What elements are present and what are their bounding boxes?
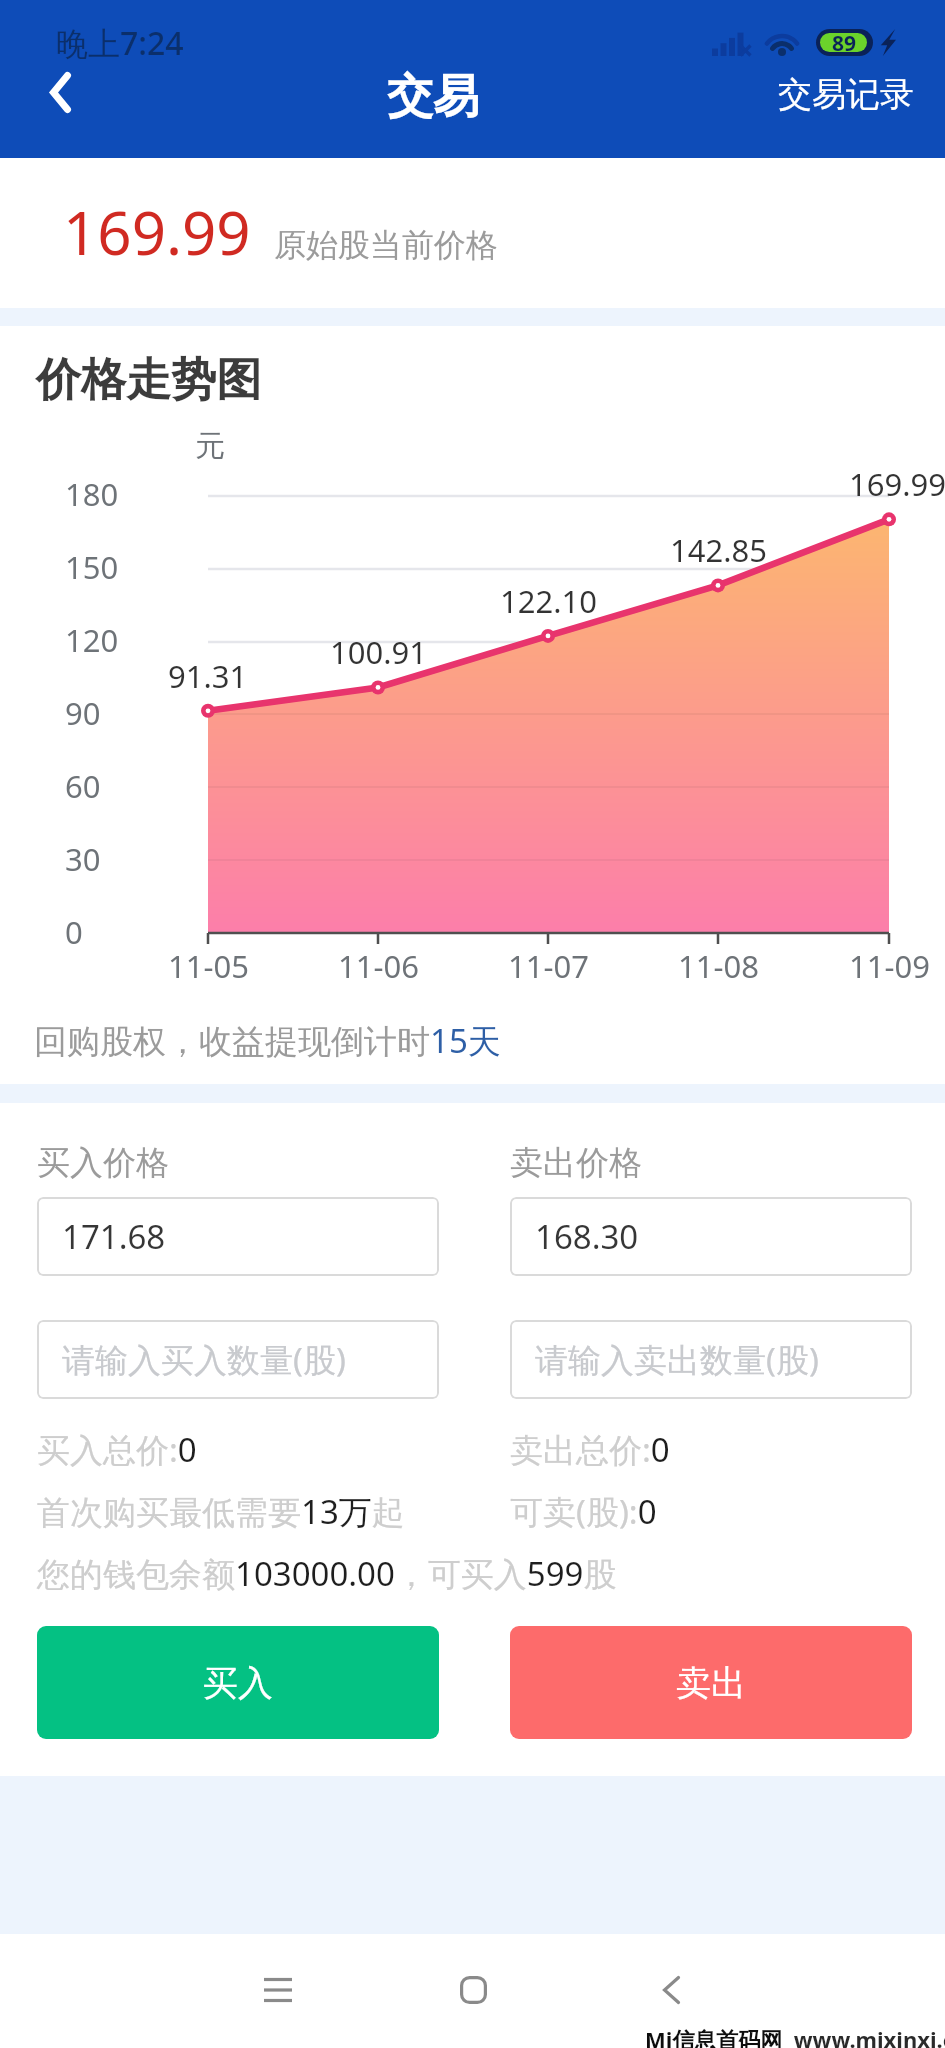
staticText: Mi信息首码网 www.mixinxi.com [645, 2024, 945, 2048]
staticText: 交易记录 [778, 73, 914, 116]
staticText: 30 [65, 838, 101, 880]
staticText: 90 [65, 692, 101, 734]
staticText: 11-07 [508, 945, 589, 987]
staticText: 11-09 [849, 945, 930, 987]
staticText: 交易 [387, 68, 479, 126]
button[interactable]: 买入 [37, 1626, 439, 1739]
staticText: 买入价格 [37, 1142, 169, 1184]
staticText: 100.91 [330, 631, 427, 673]
staticText: 60 [65, 765, 101, 807]
staticText: 142.85 [670, 529, 767, 571]
staticText: 首次购买最低需要13万起 [37, 1489, 405, 1534]
button[interactable]: Home [417, 1934, 529, 2046]
staticText: 91.31 [168, 655, 248, 697]
staticText: 卖出总价:0 [510, 1427, 670, 1472]
staticText: 买入 [203, 1661, 273, 1705]
staticText: 11-08 [678, 945, 759, 987]
staticText: 11-05 [168, 945, 249, 987]
staticText: 卖出 [676, 1661, 746, 1705]
staticText: 0 [65, 911, 83, 953]
staticText: 可卖(股):0 [510, 1489, 657, 1534]
button[interactable]: 卖出 [510, 1626, 912, 1739]
staticText: 回购股权，收益提现倒计时15天 [34, 1018, 501, 1063]
staticText: 请输入卖出数量(股) [535, 1337, 819, 1382]
staticText: 168.30 [535, 1214, 639, 1259]
staticText: 原始股当前价格 [274, 225, 498, 265]
staticText: 请输入买入数量(股) [62, 1337, 346, 1382]
staticText: 120 [65, 619, 119, 661]
button[interactable]: 请输入卖出数量(股) [510, 1320, 912, 1399]
button[interactable]: 交易记录 [778, 73, 914, 116]
staticText: 89 [832, 29, 857, 56]
staticText: 122.10 [500, 580, 597, 622]
button[interactable]: Menu [222, 1934, 334, 2046]
button[interactable]: 168.30 [510, 1197, 912, 1276]
button[interactable]: Back [20, 52, 100, 132]
staticText: 150 [65, 546, 119, 588]
button[interactable]: 171.68 [37, 1197, 439, 1276]
button[interactable]: Back [615, 1934, 727, 2046]
button[interactable]: 请输入买入数量(股) [37, 1320, 439, 1399]
staticText: 11-06 [338, 945, 419, 987]
staticText: 180 [65, 473, 119, 515]
staticText: 买入总价:0 [37, 1427, 197, 1472]
staticText: 您的钱包余额103000.00，可买入599股 [37, 1551, 617, 1596]
staticText: 171.68 [62, 1214, 166, 1259]
staticText: 169.99 [849, 463, 945, 505]
staticText: 价格走势图 [36, 352, 261, 409]
staticText: 晚上7:24 [56, 21, 184, 65]
staticText: 元 [195, 427, 225, 465]
staticText: 卖出价格 [510, 1142, 642, 1184]
staticText: 169.99 [63, 191, 251, 273]
